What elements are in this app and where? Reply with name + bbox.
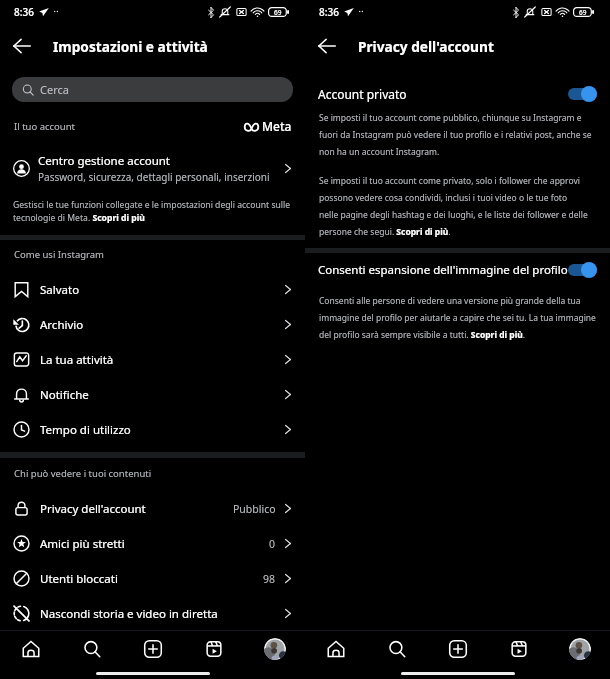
button[interactable]: Amici più stretti bbox=[0, 526, 305, 561]
button[interactable]: Crea bbox=[427, 631, 488, 667]
button[interactable]: Attiva bbox=[568, 262, 597, 278]
button[interactable]: Cerca bbox=[61, 631, 122, 667]
staticText: Se imposti il tuo account come privato, … bbox=[319, 175, 588, 238]
button[interactable]: Home bbox=[305, 631, 366, 667]
staticText: Come usi Instagram bbox=[14, 248, 104, 261]
staticText: Salvato bbox=[40, 282, 80, 298]
staticText: Pubblico bbox=[233, 502, 276, 516]
staticText: Privacy dell'account bbox=[358, 37, 494, 56]
staticText: Gestisci le tue funzioni collegate e le … bbox=[13, 199, 295, 223]
staticText: Cerca bbox=[40, 82, 69, 97]
button[interactable]: Nascondi storia e video in diretta bbox=[0, 596, 305, 631]
staticText: Meta bbox=[262, 118, 292, 134]
staticText: Account privato bbox=[318, 86, 407, 102]
staticText: 8:36 bbox=[14, 5, 34, 19]
button[interactable]: Consenti espansione dell'immagine del pr… bbox=[305, 257, 610, 283]
button[interactable]: Cerca bbox=[366, 631, 427, 667]
button[interactable]: Notifiche bbox=[0, 377, 305, 412]
staticText: 98 bbox=[263, 572, 276, 586]
staticText: La tua attività bbox=[40, 352, 114, 368]
button[interactable]: Centro gestione account bbox=[0, 150, 305, 186]
staticText: 69 bbox=[579, 8, 587, 17]
button[interactable]: Archivio bbox=[0, 307, 305, 342]
staticText: Il tuo account bbox=[14, 120, 76, 133]
button[interactable]: Privacy dell'account bbox=[0, 491, 305, 526]
button[interactable]: Home bbox=[0, 631, 61, 667]
staticText: Chi può vedere i tuoi contenuti bbox=[14, 467, 152, 480]
staticText: 0 bbox=[269, 537, 276, 551]
button[interactable]: Indietro bbox=[311, 30, 343, 62]
button[interactable]: Profilo bbox=[264, 638, 286, 660]
button[interactable]: Profilo bbox=[569, 638, 591, 660]
staticText: 69 bbox=[274, 8, 282, 17]
staticText: Impostazioni e attività bbox=[53, 37, 208, 56]
staticText: Utenti bloccati bbox=[40, 571, 118, 587]
staticText: Tempo di utilizzo bbox=[40, 422, 131, 438]
staticText: Privacy dell'account bbox=[40, 501, 146, 517]
button[interactable]: Reels bbox=[183, 631, 244, 667]
staticText: Consenti espansione dell'immagine del pr… bbox=[318, 262, 568, 278]
button[interactable]: Account privato bbox=[305, 81, 610, 107]
staticText: Archivio bbox=[40, 317, 84, 333]
staticText: Consenti alle persone di vedere una vers… bbox=[319, 295, 596, 341]
button[interactable]: Tempo di utilizzo bbox=[0, 412, 305, 447]
staticText: Password, sicurezza, dettagli personali,… bbox=[38, 170, 270, 184]
button[interactable]: Indietro bbox=[6, 30, 38, 62]
staticText: 8:36 bbox=[319, 5, 339, 19]
button[interactable]: Cerca bbox=[12, 77, 293, 102]
button[interactable]: Crea bbox=[122, 631, 183, 667]
staticText: Amici più stretti bbox=[40, 536, 125, 552]
staticText: Notifiche bbox=[40, 387, 89, 403]
button[interactable]: La tua attività bbox=[0, 342, 305, 377]
button[interactable]: Reels bbox=[488, 631, 549, 667]
button[interactable]: Utenti bloccati bbox=[0, 561, 305, 596]
button[interactable]: Attiva bbox=[568, 86, 597, 102]
button[interactable]: Salvato bbox=[0, 272, 305, 307]
staticText: Se imposti il tuo account come pubblico,… bbox=[319, 112, 597, 158]
staticText: Centro gestione account bbox=[38, 153, 171, 169]
staticText: Nascondi storia e video in diretta bbox=[40, 606, 218, 622]
